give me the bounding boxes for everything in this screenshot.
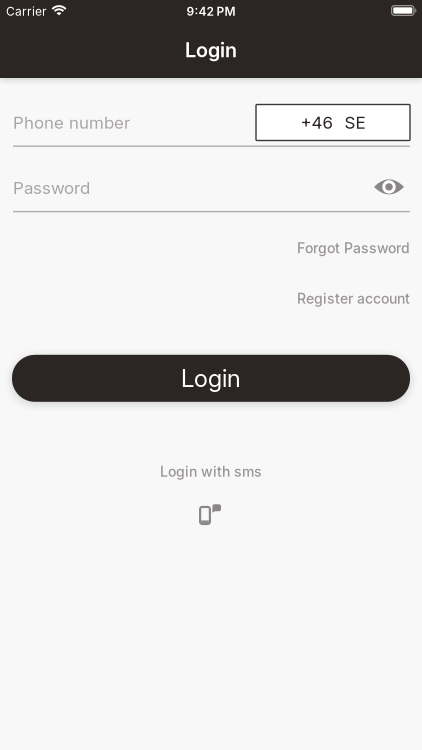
staticText: Password xyxy=(13,178,90,198)
staticText: Login with sms xyxy=(160,463,262,480)
staticText: Phone number xyxy=(13,112,130,133)
button[interactable]: Country code +46 SE xyxy=(256,104,410,140)
staticText: 9:42 PM xyxy=(186,4,235,19)
staticText: +46 xyxy=(300,112,332,133)
button[interactable]: Register account xyxy=(297,290,410,307)
staticText: Login xyxy=(181,364,241,392)
staticText: Login xyxy=(185,38,237,62)
button[interactable]: Show password xyxy=(374,179,404,195)
staticText: Carrier xyxy=(6,4,47,19)
button[interactable]: Login with sms xyxy=(160,463,262,480)
staticText: Forgot Password xyxy=(297,240,410,256)
button[interactable]: Login with sms xyxy=(199,504,223,525)
staticText: SE xyxy=(344,112,365,133)
staticText: Register account xyxy=(297,290,410,307)
button[interactable]: Login xyxy=(12,355,410,402)
button[interactable]: Forgot Password xyxy=(297,240,410,256)
